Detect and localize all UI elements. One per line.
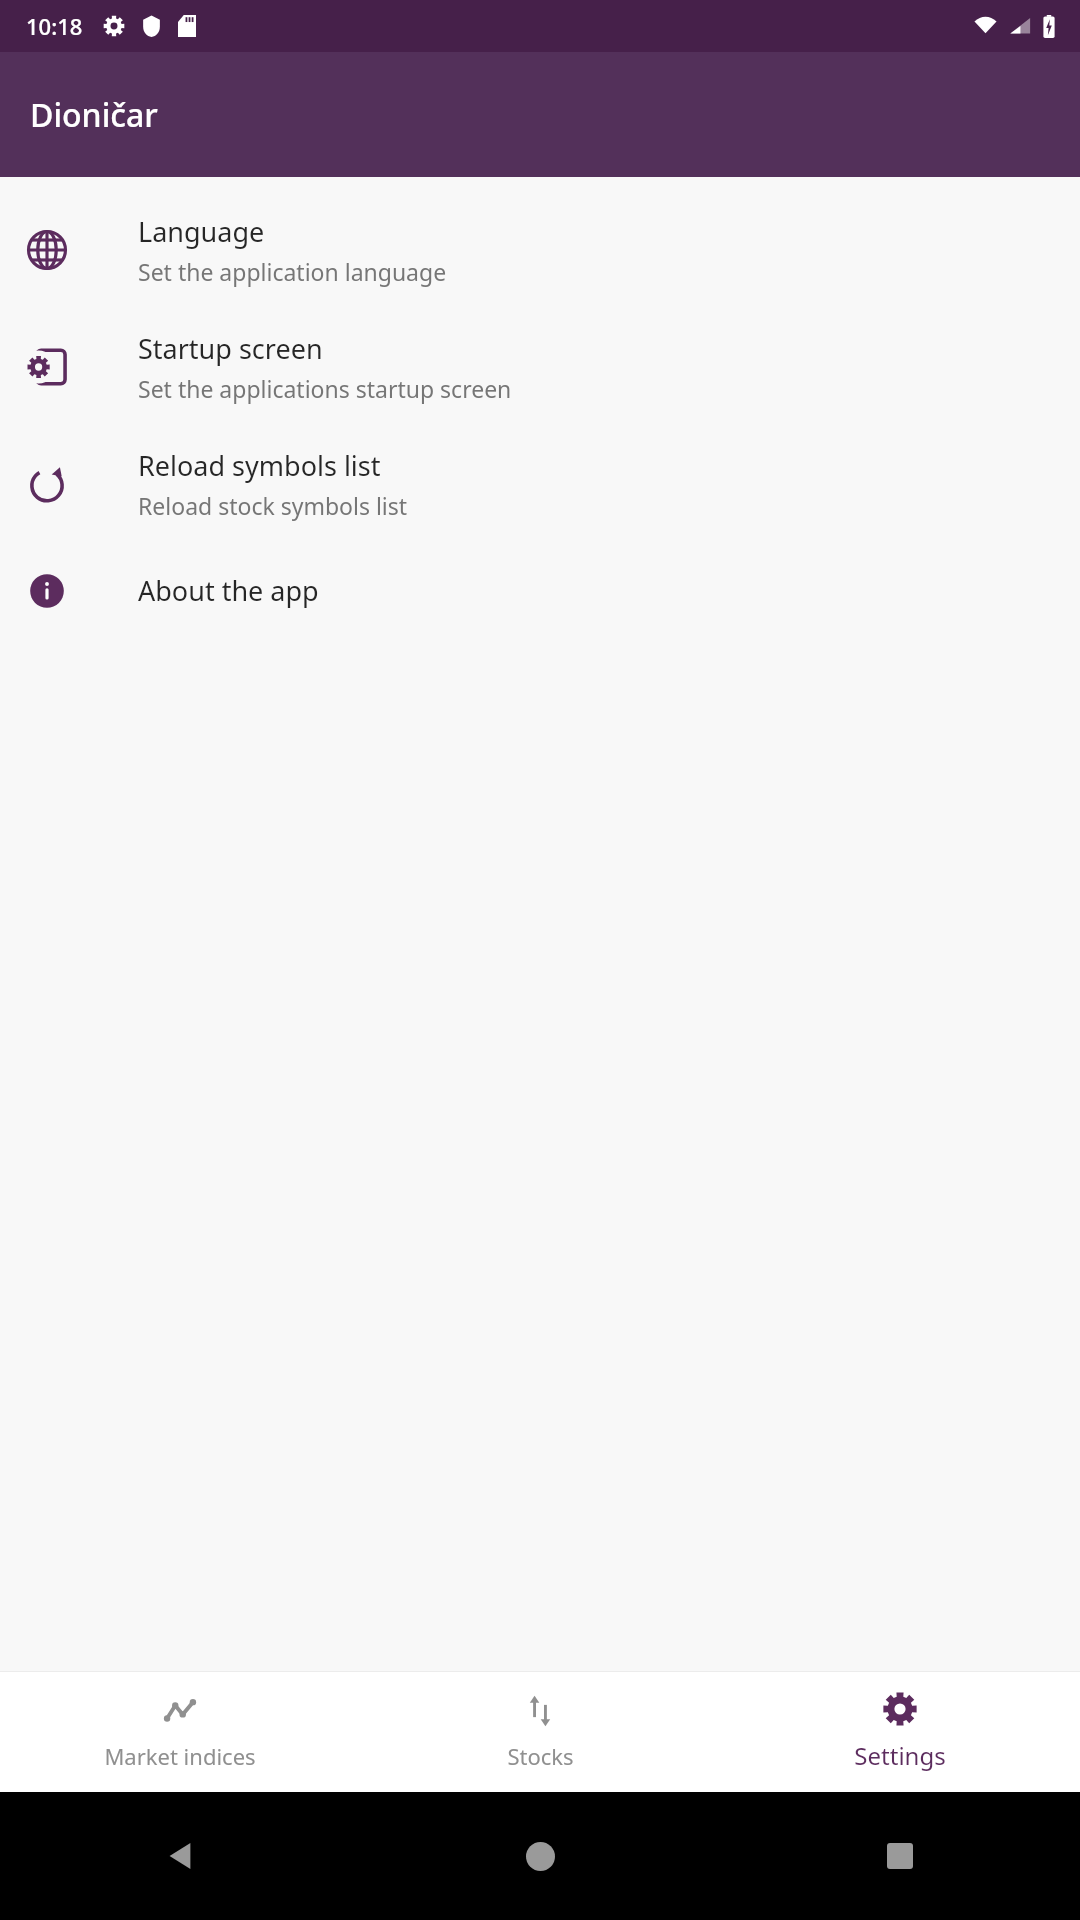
staticText: Language bbox=[138, 213, 265, 250]
other: Home bbox=[526, 1842, 555, 1871]
staticText: Reload stock symbols list bbox=[138, 490, 408, 521]
staticText: Set the applications startup screen bbox=[138, 373, 512, 404]
button[interactable]: Reload symbols list bbox=[0, 425, 1080, 542]
button[interactable]: Stocks bbox=[360, 1672, 720, 1792]
staticText: Stocks bbox=[507, 1741, 574, 1771]
button[interactable]: About the app bbox=[0, 542, 1080, 639]
staticText: About the app bbox=[138, 572, 319, 609]
staticText: Settings bbox=[854, 1739, 946, 1772]
staticText: Reload symbols list bbox=[138, 447, 381, 484]
staticText: Startup screen bbox=[138, 330, 323, 367]
staticText: Dioničar bbox=[30, 93, 158, 137]
other: Recents bbox=[887, 1843, 913, 1869]
staticText: 10:18 bbox=[26, 11, 83, 41]
staticText: Set the application language bbox=[138, 256, 447, 287]
button[interactable]: Market indices bbox=[0, 1672, 360, 1792]
button[interactable]: Settings bbox=[720, 1672, 1080, 1792]
staticText: Market indices bbox=[104, 1741, 256, 1771]
button[interactable]: Language bbox=[0, 191, 1080, 308]
button[interactable]: Startup screen bbox=[0, 308, 1080, 425]
other: Back bbox=[167, 1843, 193, 1869]
